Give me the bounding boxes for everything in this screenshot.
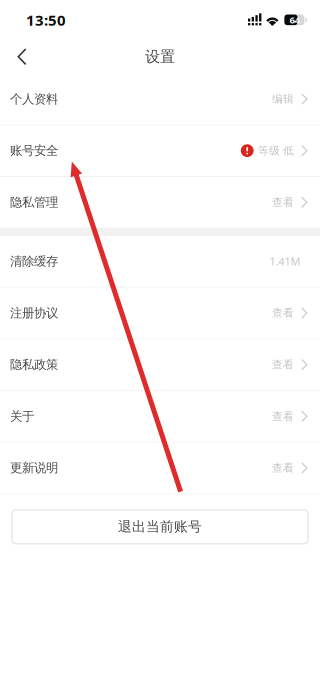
staticText: 注册协议 xyxy=(10,305,58,321)
staticText: 查看 xyxy=(272,461,294,475)
button[interactable]: Back xyxy=(0,40,44,74)
staticText: 查看 xyxy=(272,409,294,423)
staticText: 退出当前账号 xyxy=(118,518,202,535)
staticText: 13:50 xyxy=(26,10,66,30)
staticText: 编辑 xyxy=(272,92,294,106)
button[interactable]: 清除缓存 xyxy=(0,236,320,287)
staticText: 1.41M xyxy=(269,254,300,269)
staticText: 关于 xyxy=(10,408,34,424)
button[interactable]: 隐私管理 xyxy=(0,177,320,228)
staticText: 查看 xyxy=(272,195,294,209)
staticText: 个人资料 xyxy=(10,91,58,107)
staticText: 设置 xyxy=(145,47,175,66)
staticText: 查看 xyxy=(272,358,294,371)
button[interactable]: 关于 xyxy=(0,391,320,442)
button[interactable]: 更新说明 xyxy=(0,443,320,493)
button[interactable]: 退出当前账号 xyxy=(12,510,308,544)
staticText: 更新说明 xyxy=(10,460,58,476)
button[interactable]: 个人资料 xyxy=(0,74,320,124)
staticText: 等级 低 xyxy=(258,144,294,157)
staticText: 查看 xyxy=(272,306,294,320)
staticText: 64 xyxy=(289,13,299,26)
staticText: 账号安全 xyxy=(10,143,58,158)
staticText: 清除缓存 xyxy=(10,254,58,269)
button[interactable]: 账号安全 xyxy=(0,125,320,176)
staticText: 隐私管理 xyxy=(10,194,58,210)
staticText: 隐私政策 xyxy=(10,357,58,372)
button[interactable]: 注册协议 xyxy=(0,288,320,338)
button[interactable]: 隐私政策 xyxy=(0,339,320,390)
